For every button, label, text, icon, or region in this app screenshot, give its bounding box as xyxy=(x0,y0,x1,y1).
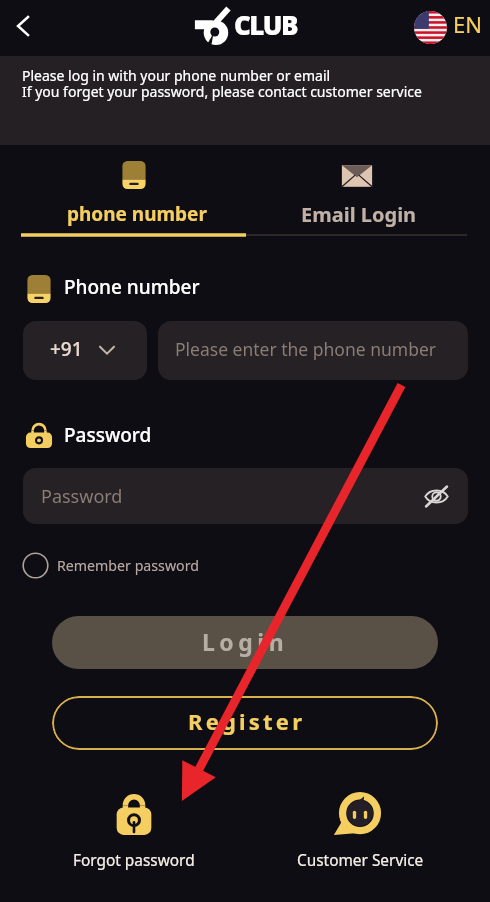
button[interactable]: phone number xyxy=(0,150,245,235)
staticText: Email Login xyxy=(301,201,417,228)
button[interactable]: Login xyxy=(52,616,438,669)
staticText: If you forget your password, please cont… xyxy=(22,82,422,101)
staticText: Login xyxy=(202,626,289,657)
staticText: Password xyxy=(41,484,123,509)
staticText: Customer Service xyxy=(297,850,424,871)
button[interactable]: Register xyxy=(52,696,438,750)
staticText: Forgot password xyxy=(73,850,195,871)
button[interactable]: Back xyxy=(4,8,44,48)
staticText: Remember password xyxy=(57,556,199,575)
button[interactable]: Email Login xyxy=(245,150,490,235)
button[interactable]: EN xyxy=(414,11,482,44)
button[interactable]: Please enter the phone number xyxy=(158,321,468,380)
button[interactable]: Password xyxy=(23,468,468,524)
staticText: CLUB xyxy=(234,7,297,42)
button[interactable]: +91 xyxy=(23,321,147,380)
staticText: phone number xyxy=(67,201,207,227)
staticText: Please log in with your phone number or … xyxy=(22,66,331,85)
staticText: Please enter the phone number xyxy=(175,337,437,361)
staticText: Phone number xyxy=(64,274,200,300)
staticText: Password xyxy=(64,422,152,448)
staticText: Register xyxy=(188,706,306,736)
button[interactable]: Customer Service xyxy=(288,789,432,871)
staticText: +91 xyxy=(50,336,83,362)
staticText: EN xyxy=(453,9,482,39)
button[interactable]: Show password xyxy=(418,478,454,514)
button[interactable]: Forgot password xyxy=(64,786,204,871)
button[interactable]: Remember password xyxy=(22,552,199,579)
